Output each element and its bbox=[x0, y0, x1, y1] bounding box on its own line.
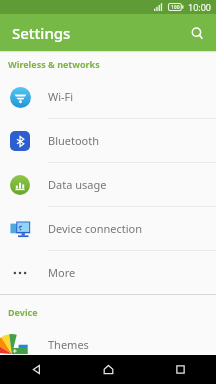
button[interactable]: Bluetooth bbox=[0, 119, 216, 163]
button[interactable]: Device connection bbox=[0, 207, 216, 251]
staticText: Device connection bbox=[48, 221, 143, 236]
button[interactable]: More bbox=[0, 251, 216, 294]
button[interactable]: Back bbox=[0, 355, 72, 384]
staticText: Device bbox=[8, 306, 38, 318]
staticText: 100 bbox=[171, 4, 180, 11]
staticText: Wireless & networks bbox=[8, 58, 100, 70]
staticText: Themes bbox=[48, 337, 89, 352]
button[interactable]: Home bbox=[72, 355, 144, 384]
staticText: Data usage bbox=[48, 177, 107, 192]
staticText: Settings bbox=[12, 23, 71, 43]
button[interactable]: Recents bbox=[144, 355, 216, 384]
staticText: Bluetooth bbox=[48, 133, 100, 148]
button[interactable]: Themes bbox=[0, 323, 216, 355]
staticText: 10:00 bbox=[188, 1, 212, 13]
staticText: Wi-Fi bbox=[48, 89, 74, 104]
button[interactable]: Wi-Fi bbox=[0, 75, 216, 119]
button[interactable]: Search bbox=[183, 19, 211, 47]
staticText: More bbox=[48, 265, 76, 280]
button[interactable]: Data usage bbox=[0, 163, 216, 207]
